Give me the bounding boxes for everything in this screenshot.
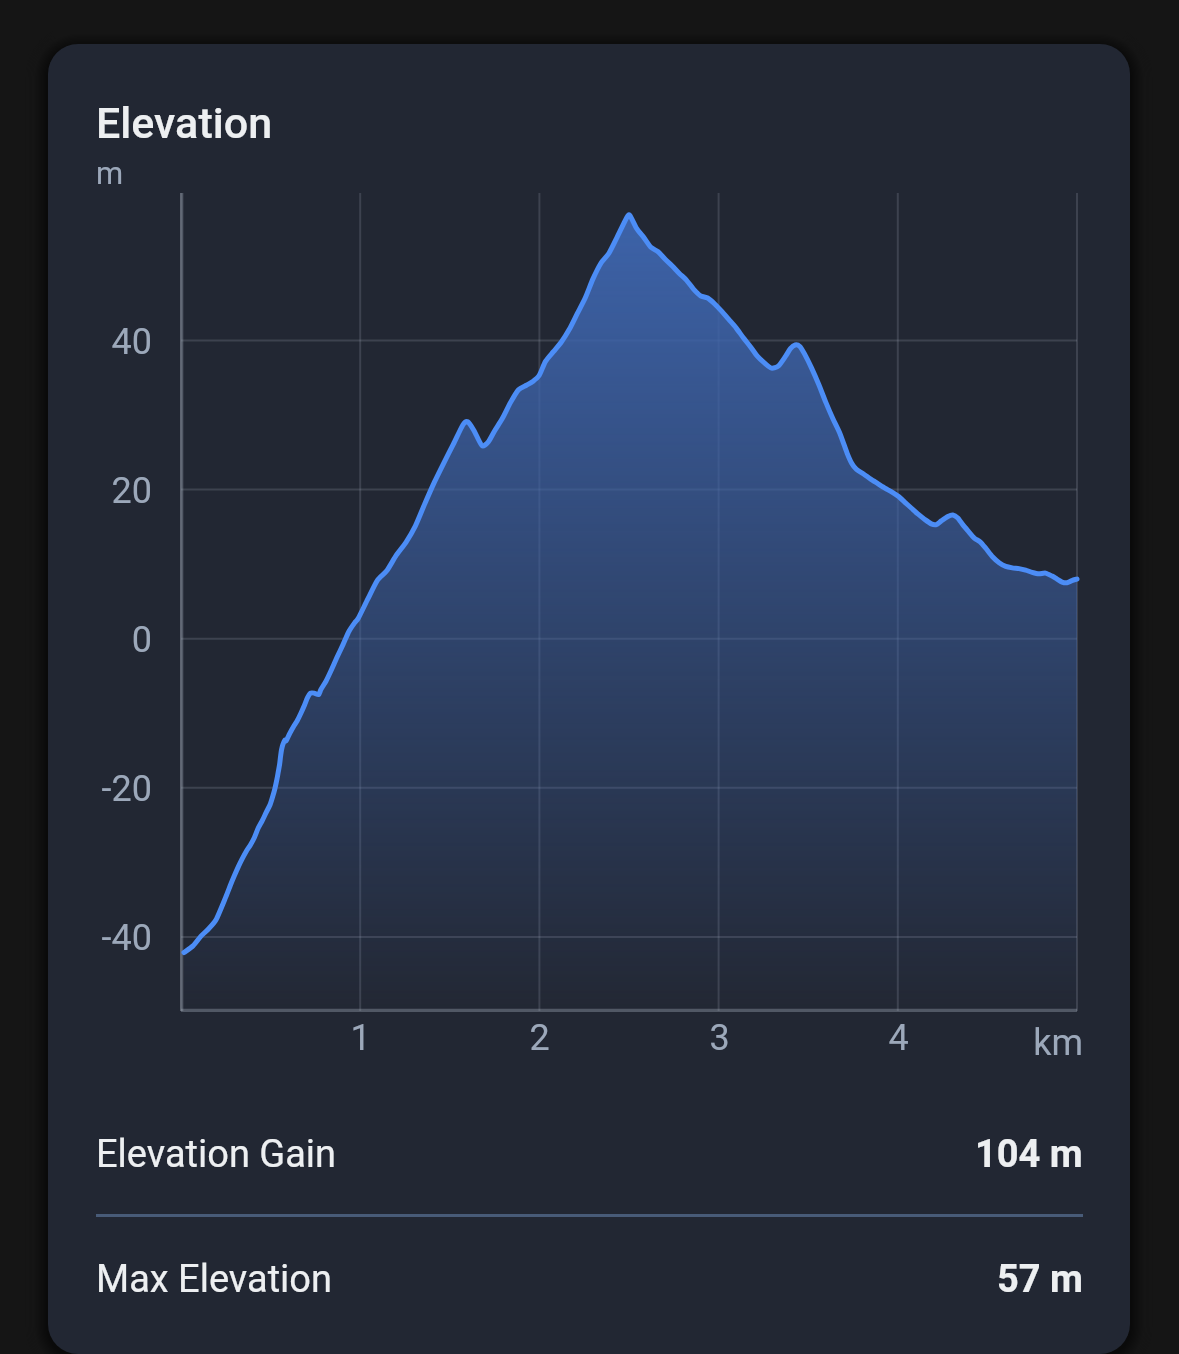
staticText: 104 m — [975, 1132, 1083, 1177]
staticText: 20 — [111, 470, 152, 512]
staticText: 3 — [709, 1017, 730, 1059]
staticText: -20 — [101, 768, 152, 810]
staticText: Max Elevation — [96, 1257, 332, 1302]
staticText: Elevation — [96, 98, 273, 148]
staticText: 4 — [888, 1017, 909, 1059]
staticText: 57 m — [997, 1257, 1083, 1302]
staticText: 1 — [350, 1017, 371, 1059]
button[interactable]: Elevation — [48, 44, 1130, 1354]
button[interactable]: Max Elevation — [48, 1219, 1130, 1339]
staticText: -40 — [101, 917, 152, 959]
button[interactable]: Elevation Gain — [48, 1093, 1130, 1216]
staticText: 0 — [131, 619, 152, 661]
staticText: 40 — [111, 321, 152, 363]
staticText: km — [1033, 1022, 1083, 1064]
staticText: m — [96, 155, 124, 191]
staticText: Elevation Gain — [96, 1132, 337, 1177]
staticText: 2 — [529, 1017, 550, 1059]
